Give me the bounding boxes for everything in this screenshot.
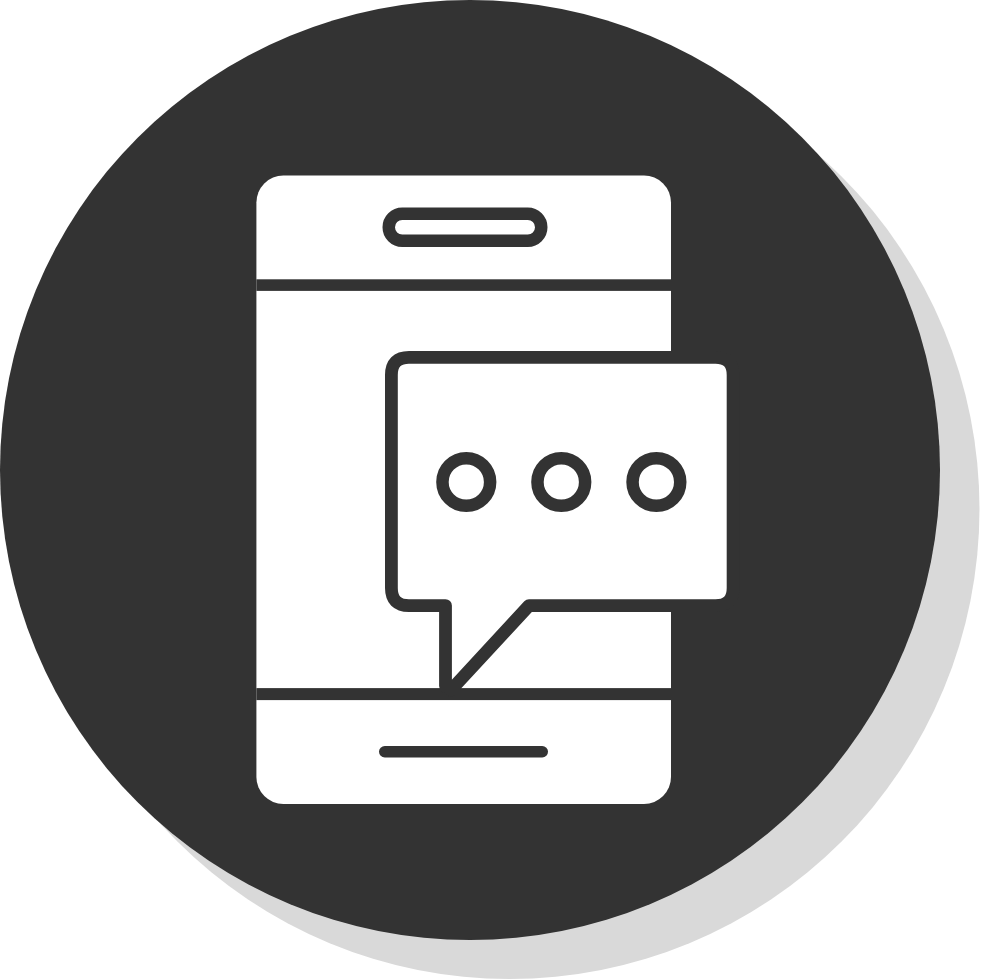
button[interactable]: Mobile chat message icon (0, 0, 982, 980)
